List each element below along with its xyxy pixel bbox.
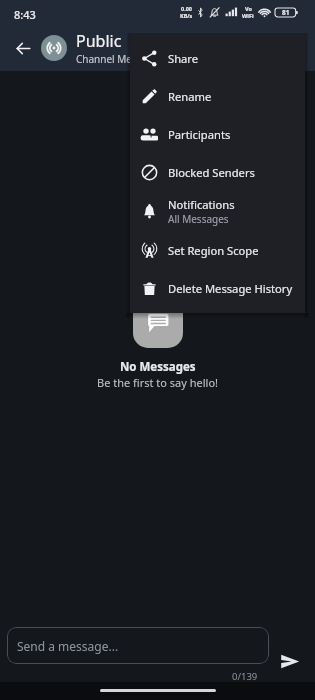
staticText: WiFi <box>242 12 254 19</box>
button[interactable]: Back <box>5 30 41 66</box>
button[interactable]: Set Region Scope <box>130 231 305 269</box>
button[interactable]: Participants <box>130 115 305 153</box>
staticText: 8:43 <box>14 7 36 22</box>
staticText: 0/139 <box>232 670 258 683</box>
staticText: No Messages <box>120 359 196 375</box>
button[interactable]: Blocked Senders <box>130 153 305 191</box>
button[interactable]: Share <box>130 39 305 77</box>
staticText: Channel Messages <box>76 52 164 66</box>
staticText: Send a message... <box>17 638 119 654</box>
staticText: 81 <box>282 8 290 17</box>
staticText: 0.00 <box>181 5 192 12</box>
staticText: Public <box>76 30 122 52</box>
staticText: Delete Message History <box>168 281 293 296</box>
staticText: Participants <box>168 127 231 142</box>
button[interactable]: Notifications <box>130 191 305 231</box>
staticText: Notifications <box>168 197 235 212</box>
staticText: Vo <box>245 5 252 12</box>
button[interactable]: Rename <box>130 77 305 115</box>
button[interactable]: Send a message... <box>7 627 269 664</box>
staticText: Rename <box>168 89 212 104</box>
staticText: KB/s <box>180 12 193 19</box>
staticText: Set Region Scope <box>168 243 259 258</box>
button[interactable]: Delete Message History <box>130 269 305 307</box>
staticText: All Messages <box>168 212 229 226</box>
button[interactable]: Send <box>273 645 306 678</box>
staticText: Share <box>168 51 199 66</box>
staticText: Blocked Senders <box>168 165 255 180</box>
staticText: Be the first to say hello! <box>97 375 218 390</box>
